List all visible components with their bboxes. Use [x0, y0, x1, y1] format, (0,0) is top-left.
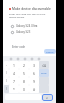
staticText: device below: [9, 15, 25, 18]
button[interactable]: Galaxy S23: [3, 29, 56, 35]
button[interactable]: Enter code: [12, 45, 26, 49]
button[interactable]: done: [39, 69, 49, 77]
staticText: 7: [13, 79, 15, 84]
button[interactable]: 3: [29, 61, 39, 69]
staticText: 8: [23, 79, 25, 84]
button[interactable]: *: [9, 85, 19, 93]
button[interactable]: Galaxy S24 Ultra: [3, 23, 56, 29]
staticText: /: [6, 71, 7, 75]
button[interactable]: -: [4, 61, 9, 69]
staticText: Done: [41, 72, 47, 75]
button[interactable]: 0: [19, 85, 29, 93]
staticText: 6: [33, 71, 35, 76]
button[interactable]: Enter: [42, 94, 53, 101]
staticText: 5: [23, 71, 25, 76]
staticText: ): [6, 87, 7, 91]
staticText: Galaxy S23: [16, 30, 31, 34]
button[interactable]: (: [4, 77, 9, 85]
button[interactable]: ): [4, 85, 9, 93]
button[interactable]: 4: [9, 69, 19, 77]
button[interactable]: bs: [39, 61, 49, 69]
staticText: 9: [33, 79, 35, 84]
button[interactable]: Cancel: [44, 49, 56, 54]
staticText: Galaxy S24 Ultra: [16, 24, 38, 28]
button[interactable]: 9: [29, 77, 39, 85]
staticText: Enter the code you see on your: [9, 12, 46, 15]
staticText: 3: [33, 63, 35, 68]
staticText: 0: [23, 87, 25, 92]
button[interactable]: 8: [19, 77, 29, 85]
button[interactable]: #: [29, 85, 39, 93]
staticText: Make device discoverable: [12, 7, 51, 11]
button[interactable]: Toolbar icon: [7, 56, 14, 61]
button[interactable]: Toolbar icon: [21, 56, 28, 61]
button[interactable]: Toolbar icon: [28, 56, 35, 61]
staticText: 4: [13, 71, 15, 76]
staticText: -: [6, 63, 7, 67]
button[interactable]: 7: [9, 77, 19, 85]
staticText: #: [33, 87, 36, 92]
button[interactable]: Toolbar icon: [14, 56, 21, 61]
staticText: Cancel: [46, 50, 54, 53]
staticText: ↵: [46, 96, 49, 99]
staticText: *: [13, 87, 15, 92]
button[interactable]: 1: [9, 61, 19, 69]
staticText: 1: [13, 63, 15, 68]
staticText: ⌫: [42, 64, 47, 67]
button[interactable]: /: [4, 69, 9, 77]
button[interactable]: Toolbar icon: [35, 56, 42, 61]
button[interactable]: 5: [19, 69, 29, 77]
button[interactable]: 2: [19, 61, 29, 69]
button[interactable]: 6: [29, 69, 39, 77]
staticText: 2: [23, 63, 25, 68]
staticText: (: [6, 79, 7, 83]
